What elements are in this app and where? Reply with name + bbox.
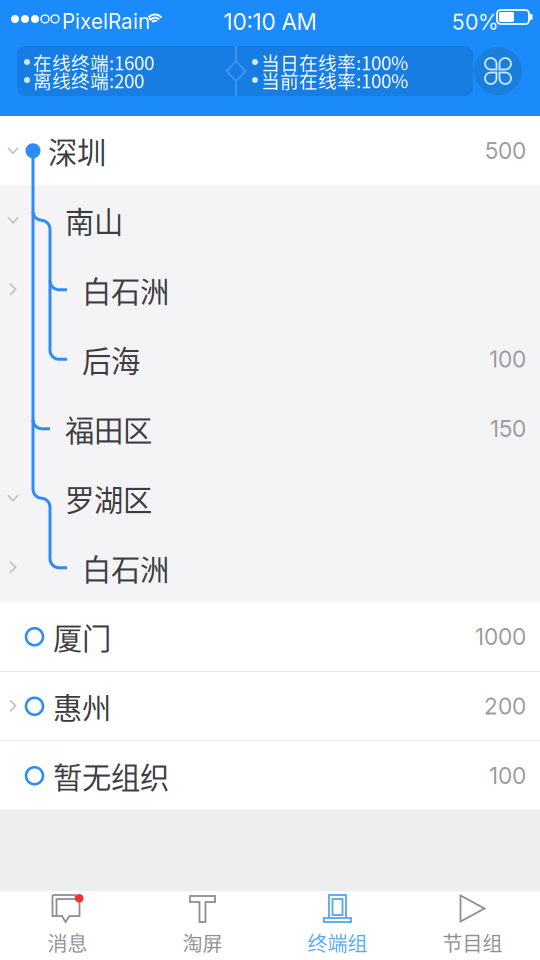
staticText: 100 <box>489 762 526 789</box>
staticText: 惠州 <box>53 685 111 727</box>
staticText: 厦门 <box>53 615 111 658</box>
staticText: 100 <box>489 345 526 373</box>
staticText: 离线终端:200 <box>33 66 144 93</box>
button[interactable]: 暂无组织 <box>0 741 540 811</box>
staticText: 200 <box>484 692 526 720</box>
staticText: 福田区 <box>65 407 152 450</box>
button[interactable]: 终端组 <box>270 891 405 960</box>
staticText: 南山 <box>65 199 123 241</box>
button[interactable]: 厦门 <box>0 602 540 672</box>
staticText: 节目组 <box>442 928 502 957</box>
staticText: PixelRain <box>62 9 150 34</box>
button[interactable]: 南山 <box>0 185 540 255</box>
staticText: 150 <box>490 415 526 442</box>
staticText: 白石洲 <box>82 268 169 311</box>
staticText: 500 <box>485 137 526 164</box>
staticText: 1000 <box>475 623 526 650</box>
staticText: 当前在线率:100% <box>261 66 408 93</box>
button[interactable]: 节目组 <box>405 891 540 960</box>
staticText: 在线终端:1600 <box>33 48 154 75</box>
button[interactable]: 深圳 <box>0 116 540 185</box>
staticText: 后海 <box>82 338 140 380</box>
button[interactable]: 白石洲 <box>0 533 540 602</box>
staticText: 10:10 AM <box>223 8 316 35</box>
button[interactable]: Apps <box>474 47 522 95</box>
staticText: 消息 <box>47 928 87 957</box>
staticText: 罗湖区 <box>65 477 152 519</box>
button[interactable]: 罗湖区 <box>0 463 540 533</box>
button[interactable]: 后海 <box>0 324 540 394</box>
button[interactable]: 白石洲 <box>0 255 540 324</box>
staticText: 白石洲 <box>82 546 169 589</box>
button[interactable]: 消息 <box>0 891 135 960</box>
button[interactable]: 淘屏 <box>135 891 270 960</box>
staticText: 当日在线率:100% <box>261 48 408 75</box>
staticText: 淘屏 <box>182 928 222 957</box>
button[interactable]: 福田区 <box>0 394 540 463</box>
staticText: 50% <box>452 9 499 35</box>
button[interactable]: 惠州 <box>0 672 540 741</box>
staticText: 暂无组织 <box>53 754 169 797</box>
staticText: 终端组 <box>307 928 367 957</box>
staticText: 深圳 <box>48 129 106 172</box>
